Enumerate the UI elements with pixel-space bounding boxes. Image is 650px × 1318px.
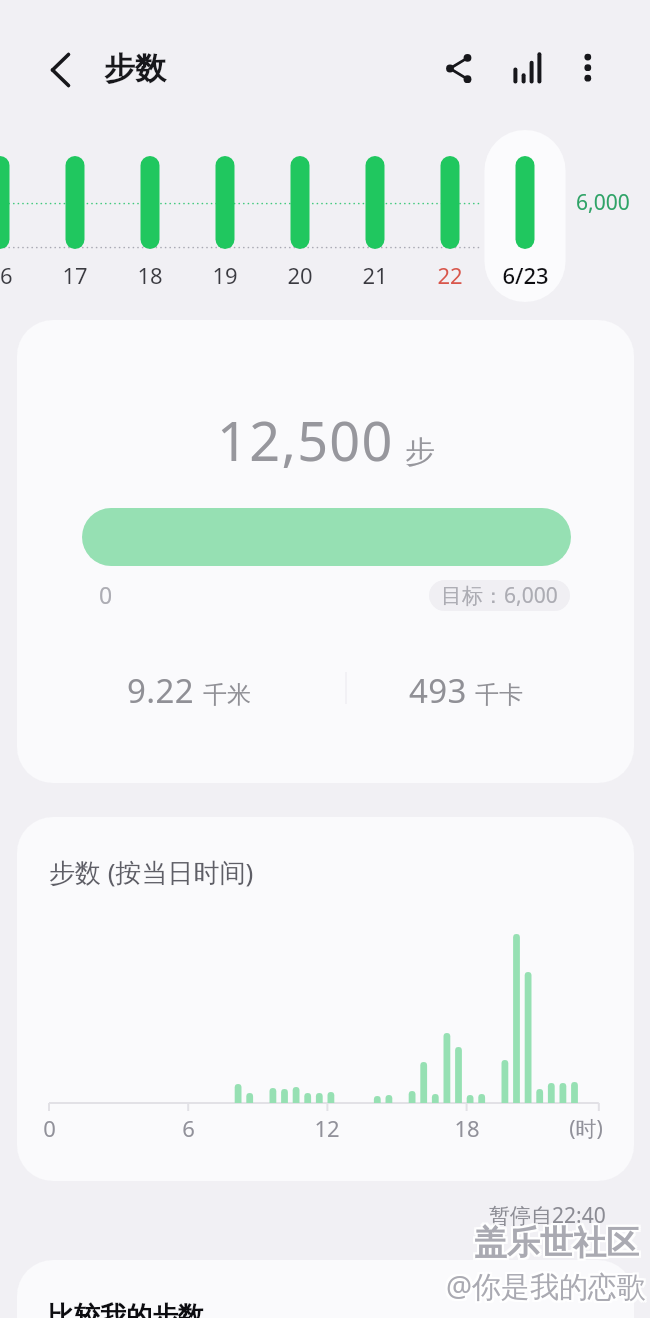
staticText: 12,500 bbox=[217, 403, 394, 477]
button[interactable]: 16 bbox=[0, 130, 37, 302]
staticText: 千米 bbox=[203, 680, 251, 710]
button[interactable]: 22 bbox=[413, 130, 487, 302]
staticText: 20 bbox=[287, 260, 313, 290]
button[interactable]: 12,500 bbox=[17, 320, 634, 783]
button[interactable]: Back bbox=[33, 43, 87, 97]
staticText: 步 bbox=[405, 433, 435, 471]
staticText: @你是我的恋歌 bbox=[444, 1264, 645, 1304]
staticText: 盖乐世社区 bbox=[474, 1222, 639, 1264]
staticText: 9.22 bbox=[127, 668, 195, 713]
staticText: 17 bbox=[62, 260, 88, 290]
staticText: 21 bbox=[362, 260, 388, 290]
staticText: 盖乐世社区 bbox=[476, 1224, 641, 1266]
staticText: 步数 bbox=[104, 49, 166, 88]
staticText: 暂停自22:40 bbox=[489, 1201, 606, 1230]
button[interactable]: Share bbox=[431, 40, 487, 96]
staticText: @你是我的恋歌 bbox=[444, 1266, 645, 1306]
button[interactable]: 6/23 bbox=[488, 130, 562, 302]
staticText: @你是我的恋歌 bbox=[446, 1264, 647, 1304]
staticText: @你是我的恋歌 bbox=[446, 1268, 647, 1308]
button[interactable]: 18 bbox=[113, 130, 187, 302]
staticText: 盖乐世社区 bbox=[474, 1220, 639, 1262]
staticText: @你是我的恋歌 bbox=[448, 1266, 649, 1306]
staticText: 盖乐世社区 bbox=[472, 1220, 637, 1262]
staticText: 比较我的步数 bbox=[48, 1300, 204, 1318]
staticText: 盖乐世社区 bbox=[476, 1220, 641, 1262]
staticText: 盖乐世社区 bbox=[472, 1222, 637, 1264]
staticText: 19 bbox=[212, 260, 238, 290]
staticText: @你是我的恋歌 bbox=[448, 1264, 649, 1304]
staticText: 493 bbox=[409, 668, 467, 713]
staticText: 盖乐世社区 bbox=[472, 1224, 637, 1266]
button[interactable]: 17 bbox=[38, 130, 112, 302]
button[interactable]: 20 bbox=[263, 130, 337, 302]
staticText: 6,000 bbox=[576, 188, 630, 217]
staticText: 6/23 bbox=[502, 260, 549, 290]
staticText: 0 bbox=[99, 579, 113, 610]
button[interactable]: 19 bbox=[188, 130, 262, 302]
staticText: 目标：6,000 bbox=[441, 581, 558, 610]
staticText: @你是我的恋歌 bbox=[446, 1266, 647, 1306]
staticText: 盖乐世社区 bbox=[476, 1222, 641, 1264]
staticText: 22 bbox=[437, 260, 463, 290]
button[interactable]: 比较我的步数 bbox=[17, 1260, 634, 1318]
staticText: 12 bbox=[314, 1113, 340, 1143]
staticText: 18 bbox=[137, 260, 163, 290]
button[interactable]: Trends bbox=[499, 40, 555, 96]
staticText: 步数 (按当日时间) bbox=[49, 854, 254, 890]
staticText: 千卡 bbox=[475, 680, 523, 710]
staticText: 6 bbox=[182, 1113, 195, 1143]
staticText: @你是我的恋歌 bbox=[448, 1268, 649, 1308]
staticText: 0 bbox=[43, 1113, 56, 1143]
button[interactable]: More options bbox=[560, 40, 616, 96]
button[interactable]: 21 bbox=[338, 130, 412, 302]
staticText: 盖乐世社区 bbox=[474, 1224, 639, 1266]
staticText: 16 bbox=[0, 260, 13, 290]
staticText: @你是我的恋歌 bbox=[444, 1268, 645, 1308]
staticText: 18 bbox=[454, 1113, 480, 1143]
button[interactable]: 步数 (按当日时间) bbox=[17, 817, 634, 1181]
staticText: (时) bbox=[569, 1114, 603, 1143]
